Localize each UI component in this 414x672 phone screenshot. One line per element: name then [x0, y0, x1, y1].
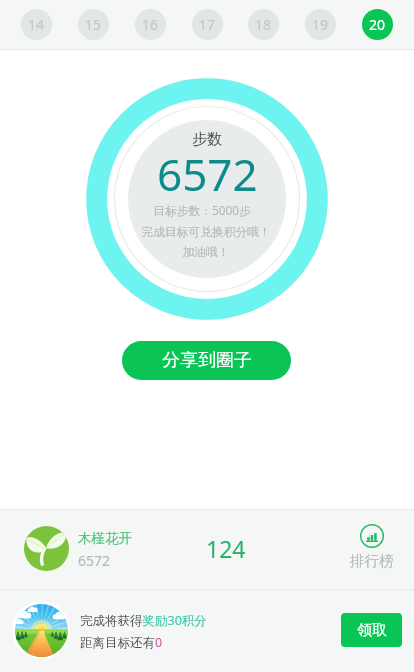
staticText: 完成目标可兑换积分哦！: [141, 225, 271, 240]
button[interactable]: 奖励: [12, 601, 70, 659]
staticText: 排行榜: [350, 552, 394, 570]
staticText: 20: [369, 15, 386, 34]
button[interactable]: 14: [21, 9, 52, 40]
button[interactable]: 分享到圈子: [122, 341, 291, 380]
staticText: 17: [199, 15, 216, 34]
staticText: 目标步数：5000步: [153, 202, 251, 218]
staticText: 加油哦！: [182, 245, 230, 260]
button[interactable]: 16: [135, 9, 166, 40]
staticText: 16: [142, 15, 159, 34]
button[interactable]: 领取: [341, 613, 402, 647]
staticText: 木槿花开: [78, 530, 132, 547]
staticText: 领取: [357, 621, 387, 640]
button[interactable]: 18: [248, 9, 279, 40]
button[interactable]: 木槿花开: [16, 515, 196, 584]
staticText: 19: [312, 15, 329, 34]
staticText: 6572: [157, 144, 258, 204]
staticText: 6572: [78, 551, 111, 570]
staticText: 步数: [192, 130, 222, 149]
button[interactable]: 20: [362, 9, 393, 40]
staticText: 分享到圈子: [162, 349, 252, 372]
staticText: 完成将获得奖励30积分: [80, 612, 207, 629]
button[interactable]: 19: [305, 9, 336, 40]
button[interactable]: 排行榜: [346, 524, 398, 570]
staticText: 124: [206, 533, 246, 564]
button[interactable]: 15: [78, 9, 109, 40]
staticText: 距离目标还有0: [80, 634, 163, 651]
staticText: 15: [85, 15, 102, 34]
staticText: 18: [255, 15, 272, 34]
staticText: 14: [28, 15, 45, 34]
button[interactable]: 17: [192, 9, 223, 40]
